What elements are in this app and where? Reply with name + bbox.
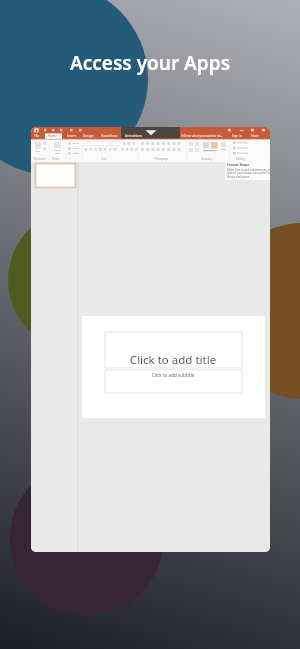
staticText: Access your Apps — [0, 50, 300, 76]
staticText: Editing — [236, 157, 245, 161]
staticText: Click to add title — [103, 352, 243, 368]
staticText: Format Shape — [227, 163, 250, 167]
staticText: Drawing — [201, 157, 212, 161]
staticText: Animations — [125, 134, 142, 138]
staticText: Design — [83, 134, 94, 138]
staticText: Shape task pane. — [227, 175, 251, 179]
staticText: Paragraph — [155, 157, 169, 161]
staticText: Insert — [67, 134, 76, 138]
staticText: Click to add subtitle — [103, 372, 243, 378]
staticText: Tell me what you want to do... — [181, 134, 224, 138]
staticText: Font — [101, 157, 107, 161]
staticText: Share — [251, 134, 260, 138]
staticText: Make fine-tuned adjustments to the — [227, 168, 270, 172]
staticText: look of your shape using the Format — [227, 171, 270, 175]
staticText: File — [34, 134, 40, 138]
staticText: Sign in — [232, 134, 242, 138]
button[interactable]: File — [31, 127, 270, 552]
staticText: Transitions — [101, 134, 118, 138]
staticText: Slides — [52, 157, 60, 161]
staticText: Clipboard — [33, 157, 46, 161]
staticText: Home — [48, 134, 58, 138]
